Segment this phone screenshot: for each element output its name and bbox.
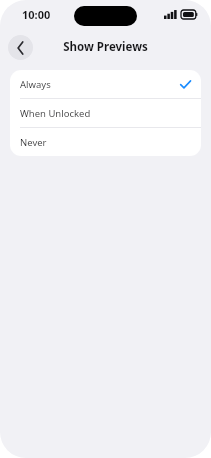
button[interactable]: Back [8, 35, 33, 60]
staticText: When Unlocked [20, 107, 91, 120]
staticText: Always [20, 78, 51, 91]
button[interactable]: Never [10, 128, 201, 156]
button[interactable]: When Unlocked [10, 99, 201, 127]
button[interactable]: Always [10, 70, 201, 98]
staticText: 10:00 [22, 7, 51, 22]
staticText: Never [20, 136, 47, 149]
staticText: Show Previews [63, 39, 148, 55]
